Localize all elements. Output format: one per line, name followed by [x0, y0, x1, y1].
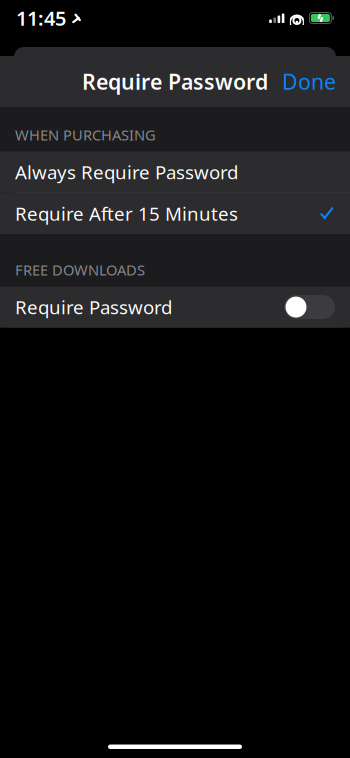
staticText: 11:45	[16, 5, 66, 31]
button[interactable]: Require Password	[0, 287, 350, 328]
button[interactable]: Always Require Password	[0, 151, 350, 192]
button[interactable]: Require After 15 Minutes	[0, 193, 350, 234]
staticText: WHEN PURCHASING	[15, 125, 156, 144]
staticText: FREE DOWNLOADS	[15, 260, 145, 280]
button[interactable]: Done	[268, 57, 350, 106]
staticText: Done	[282, 67, 336, 96]
staticText: Require After 15 Minutes	[15, 201, 238, 226]
staticText: Require Password	[15, 295, 172, 319]
staticText: Require Password	[82, 67, 268, 96]
staticText: Always Require Password	[15, 160, 238, 184]
